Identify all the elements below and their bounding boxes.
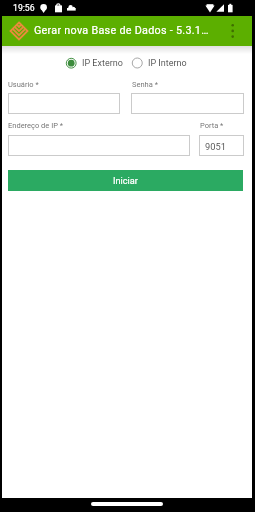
button[interactable]: More options <box>226 20 240 42</box>
button[interactable] <box>63 55 128 71</box>
button[interactable] <box>8 93 120 114</box>
button[interactable] <box>130 55 193 71</box>
button[interactable] <box>199 135 244 156</box>
staticText: IP Externo <box>82 58 123 69</box>
staticText: Endereço de IP * <box>8 121 64 130</box>
staticText: IP Interno <box>148 58 187 69</box>
staticText: Gerar nova Base de Dados - 5.3.1… <box>34 24 209 37</box>
button[interactable]: Iniciar <box>8 170 243 191</box>
staticText: Iniciar <box>113 175 138 186</box>
staticText: Senha * <box>132 80 158 89</box>
staticText: Usuário * <box>8 80 39 89</box>
staticText: 19:56 <box>13 3 35 13</box>
button[interactable] <box>8 135 190 156</box>
button[interactable] <box>131 93 244 114</box>
staticText: Porta * <box>200 121 224 130</box>
staticText: 9051 <box>205 141 226 152</box>
